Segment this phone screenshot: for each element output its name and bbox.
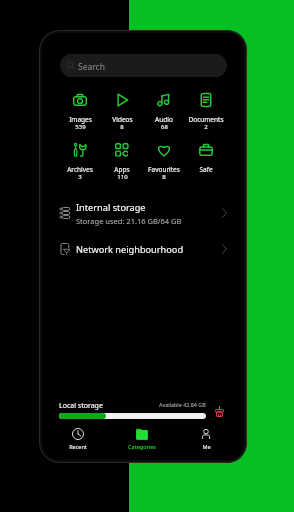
- button[interactable]: Safe: [185, 138, 227, 184]
- button[interactable]: Favourites: [143, 138, 185, 184]
- staticText: Network neighbourhood: [76, 243, 184, 256]
- staticText: 110: [117, 173, 128, 181]
- button[interactable]: Audio: [143, 88, 185, 134]
- staticText: Apps: [114, 165, 130, 174]
- staticText: 539: [75, 123, 86, 131]
- staticText: Documents: [188, 115, 224, 124]
- button[interactable]: Videos: [101, 88, 143, 134]
- button[interactable]: Internal storage: [42, 196, 244, 230]
- staticText: 3: [78, 173, 82, 181]
- staticText: Recent: [69, 443, 87, 450]
- staticText: Images: [69, 115, 92, 124]
- staticText: 68: [161, 123, 168, 131]
- staticText: Audio: [155, 115, 173, 124]
- staticText: Videos: [112, 115, 133, 124]
- button[interactable]: Clean up storage: [215, 406, 224, 417]
- button[interactable]: Network neighbourhood: [42, 234, 244, 264]
- staticText: 8: [162, 173, 166, 181]
- staticText: Favourites: [148, 165, 180, 174]
- button[interactable]: Apps: [101, 138, 143, 184]
- button[interactable]: Documents: [185, 88, 227, 134]
- button[interactable]: Me: [174, 426, 238, 453]
- button[interactable]: Images: [59, 88, 101, 134]
- staticText: Local storage: [59, 401, 103, 411]
- staticText: Categories: [128, 443, 156, 450]
- staticText: Internal storage: [76, 201, 146, 214]
- staticText: Available 42.84 GB: [159, 401, 206, 408]
- staticText: Safe: [199, 165, 213, 174]
- staticText: 2: [204, 123, 208, 131]
- staticText: Search: [78, 61, 105, 73]
- staticText: 8: [120, 123, 124, 131]
- staticText: Storage used: 21.16 GB/64 GB: [76, 216, 182, 226]
- button[interactable]: Categories: [110, 426, 174, 453]
- button[interactable]: Search: [60, 54, 227, 77]
- button[interactable]: Recent: [46, 426, 110, 453]
- staticText: Me: [202, 443, 211, 450]
- button[interactable]: Archives: [59, 138, 101, 184]
- staticText: Archives: [67, 165, 93, 174]
